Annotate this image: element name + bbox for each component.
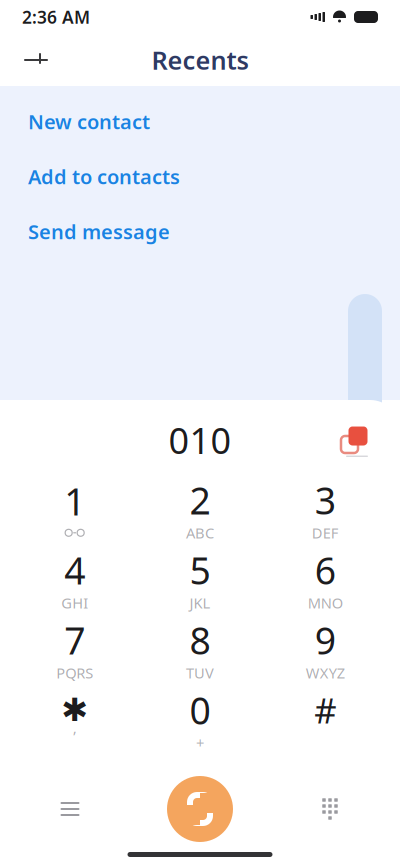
button[interactable]: 1: [12, 472, 137, 542]
staticText: TUV: [186, 663, 214, 682]
button[interactable]: ✱: [12, 682, 137, 752]
staticText: New contact: [28, 108, 150, 135]
button[interactable]: Call: [167, 776, 233, 842]
staticText: Add to contacts: [28, 163, 180, 190]
button[interactable]: 7: [12, 612, 137, 682]
button[interactable]: 5: [137, 542, 263, 612]
staticText: 4: [64, 545, 85, 595]
staticText: ABC: [186, 523, 214, 542]
staticText: 7: [64, 615, 85, 665]
staticText: 6: [315, 545, 336, 595]
button[interactable]: New contact: [0, 94, 400, 149]
button[interactable]: 6: [263, 542, 388, 612]
staticText: 5: [189, 545, 210, 595]
button[interactable]: 3: [263, 472, 388, 542]
staticText: ✱: [61, 692, 88, 728]
button[interactable]: #: [263, 682, 388, 752]
staticText: #: [314, 687, 336, 733]
staticText: 9: [315, 615, 336, 665]
staticText: 010: [168, 416, 231, 464]
staticText: DEF: [312, 523, 339, 542]
button[interactable]: 4: [12, 542, 137, 612]
button[interactable]: Send message: [0, 204, 400, 259]
button[interactable]: Call log options: [42, 781, 98, 837]
staticText: 1: [64, 476, 85, 526]
staticText: GHI: [61, 593, 88, 612]
button[interactable]: Backspace: [330, 416, 378, 464]
staticText: 0: [189, 685, 210, 735]
staticText: 2:36 AM: [22, 5, 90, 28]
button[interactable]: 9: [263, 612, 388, 682]
staticText: Send message: [28, 218, 170, 245]
staticText: PQRS: [56, 663, 93, 682]
button[interactable]: Back: [14, 38, 58, 82]
button[interactable]: 8: [137, 612, 263, 682]
staticText: JKL: [189, 593, 210, 612]
staticText: WXYZ: [306, 663, 345, 682]
staticText: ’: [73, 726, 76, 746]
staticText: 8: [189, 615, 210, 665]
button[interactable]: 0: [137, 682, 263, 752]
staticText: 3: [315, 475, 336, 525]
staticText: +: [196, 733, 204, 752]
button[interactable]: 2: [137, 472, 263, 542]
staticText: 2: [189, 475, 210, 525]
button[interactable]: Add to contacts: [0, 149, 400, 204]
button[interactable]: Keypad: [302, 781, 358, 837]
staticText: Recents: [151, 43, 248, 77]
staticText: MNO: [308, 593, 343, 612]
